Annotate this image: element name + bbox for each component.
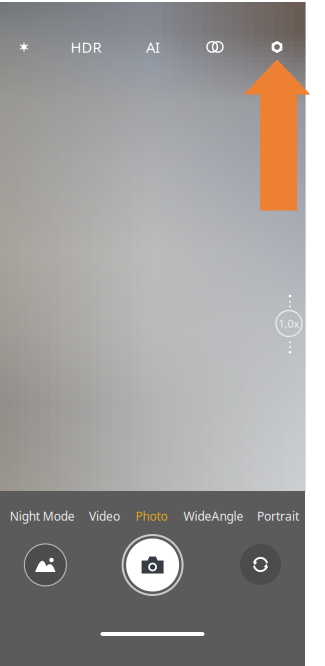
button[interactable]: HDR: [64, 30, 108, 64]
staticText: Photo: [135, 508, 167, 524]
button[interactable]: Night Mode: [0, 505, 87, 527]
button[interactable]: WideAngle: [169, 505, 259, 527]
button[interactable]: Settings: [260, 30, 294, 64]
staticText: HDR: [70, 37, 101, 57]
button[interactable]: Switch camera: [240, 544, 281, 585]
button[interactable]: Photo library: [24, 544, 66, 586]
staticText: AI: [146, 37, 160, 57]
button[interactable]: Flash: [4, 30, 44, 64]
button[interactable]: AI: [136, 30, 170, 64]
button[interactable]: 1,0x: [276, 310, 302, 336]
button[interactable]: Video: [60, 505, 150, 527]
button[interactable]: Take photo: [123, 535, 183, 595]
staticText: Portrait: [257, 508, 299, 524]
button[interactable]: Portrait: [233, 505, 323, 527]
staticText: Video: [89, 508, 120, 524]
staticText: 1,0x: [278, 316, 299, 331]
staticText: Night Mode: [10, 508, 75, 524]
button[interactable]: Portrait effect: [198, 30, 232, 64]
button[interactable]: Photo: [106, 505, 196, 527]
staticText: WideAngle: [184, 508, 244, 524]
